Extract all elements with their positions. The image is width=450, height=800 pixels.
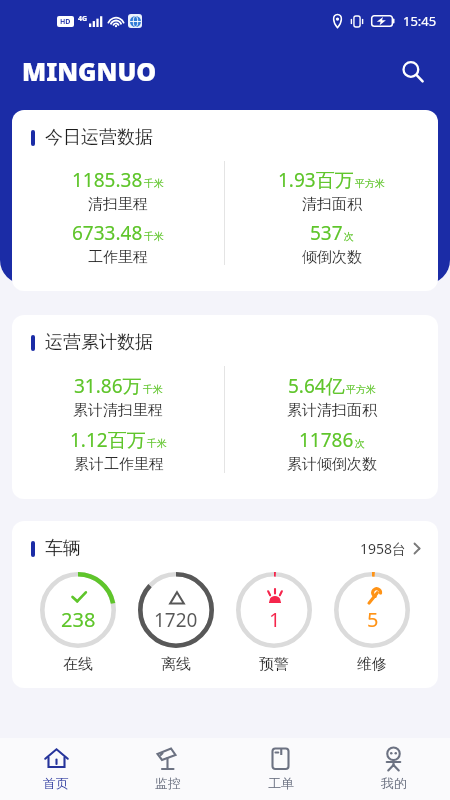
staticText: 次	[355, 437, 365, 450]
staticText: 千米	[144, 177, 164, 190]
staticText: 平方米	[346, 383, 376, 396]
staticText: 清扫里程	[88, 195, 148, 214]
staticText: 1958台	[360, 539, 407, 558]
staticText: 千米	[143, 383, 163, 396]
staticText: 预警	[259, 655, 289, 674]
staticText: 累计清扫里程	[73, 401, 163, 420]
button[interactable]: 5	[334, 572, 410, 674]
button[interactable]: 1958台	[360, 539, 421, 558]
staticText: 工作里程	[88, 248, 148, 267]
staticText: 维修	[357, 655, 387, 674]
staticText: 离线	[161, 655, 191, 674]
staticText: 238	[61, 606, 96, 633]
staticText: 运营累计数据	[45, 331, 153, 354]
button[interactable]: 238	[40, 572, 116, 674]
staticText: 车辆	[45, 537, 81, 560]
staticText: 累计清扫面积	[287, 401, 377, 420]
staticText: 倾倒次数	[302, 248, 362, 267]
button[interactable]: 1	[236, 572, 312, 674]
staticText: 平方米	[355, 177, 385, 190]
button[interactable]: 运营累计数据	[12, 315, 438, 499]
staticText: 1.93百万	[278, 167, 354, 193]
staticText: MINGNUO	[22, 54, 157, 88]
staticText: 15:45	[403, 12, 437, 30]
staticText: 5.64亿	[288, 373, 345, 399]
button[interactable]: 工单	[224, 738, 337, 800]
staticText: 537	[310, 220, 343, 246]
staticText: 6733.48	[72, 220, 143, 246]
staticText: 千米	[144, 230, 164, 243]
staticText: 首页	[43, 775, 69, 791]
staticText: 11786	[299, 427, 354, 453]
staticText: 5	[367, 606, 379, 633]
staticText: 1720	[154, 607, 198, 633]
button[interactable]: 首页	[0, 738, 112, 800]
staticText: 今日运营数据	[45, 126, 153, 149]
button[interactable]: 监控	[112, 738, 224, 800]
staticText: 1.12百万	[70, 427, 146, 453]
button[interactable]: 我的	[337, 738, 450, 800]
staticText: 31.86万	[74, 373, 142, 399]
button[interactable]: 1720	[138, 572, 214, 674]
staticText: 清扫面积	[302, 195, 362, 214]
staticText: 我的	[381, 775, 407, 791]
button[interactable]: 今日运营数据	[12, 110, 438, 291]
staticText: 4G	[78, 14, 88, 24]
staticText: 在线	[63, 655, 93, 674]
staticText: 千米	[147, 437, 167, 450]
staticText: 次	[344, 230, 354, 243]
button[interactable]: Search	[391, 50, 433, 92]
staticText: HD	[60, 17, 71, 27]
staticText: 累计工作里程	[74, 455, 164, 474]
staticText: 监控	[155, 775, 181, 791]
staticText: 工单	[268, 775, 294, 791]
staticText: 1185.38	[72, 167, 143, 193]
staticText: 1	[269, 606, 281, 633]
staticText: 累计倾倒次数	[287, 455, 377, 474]
